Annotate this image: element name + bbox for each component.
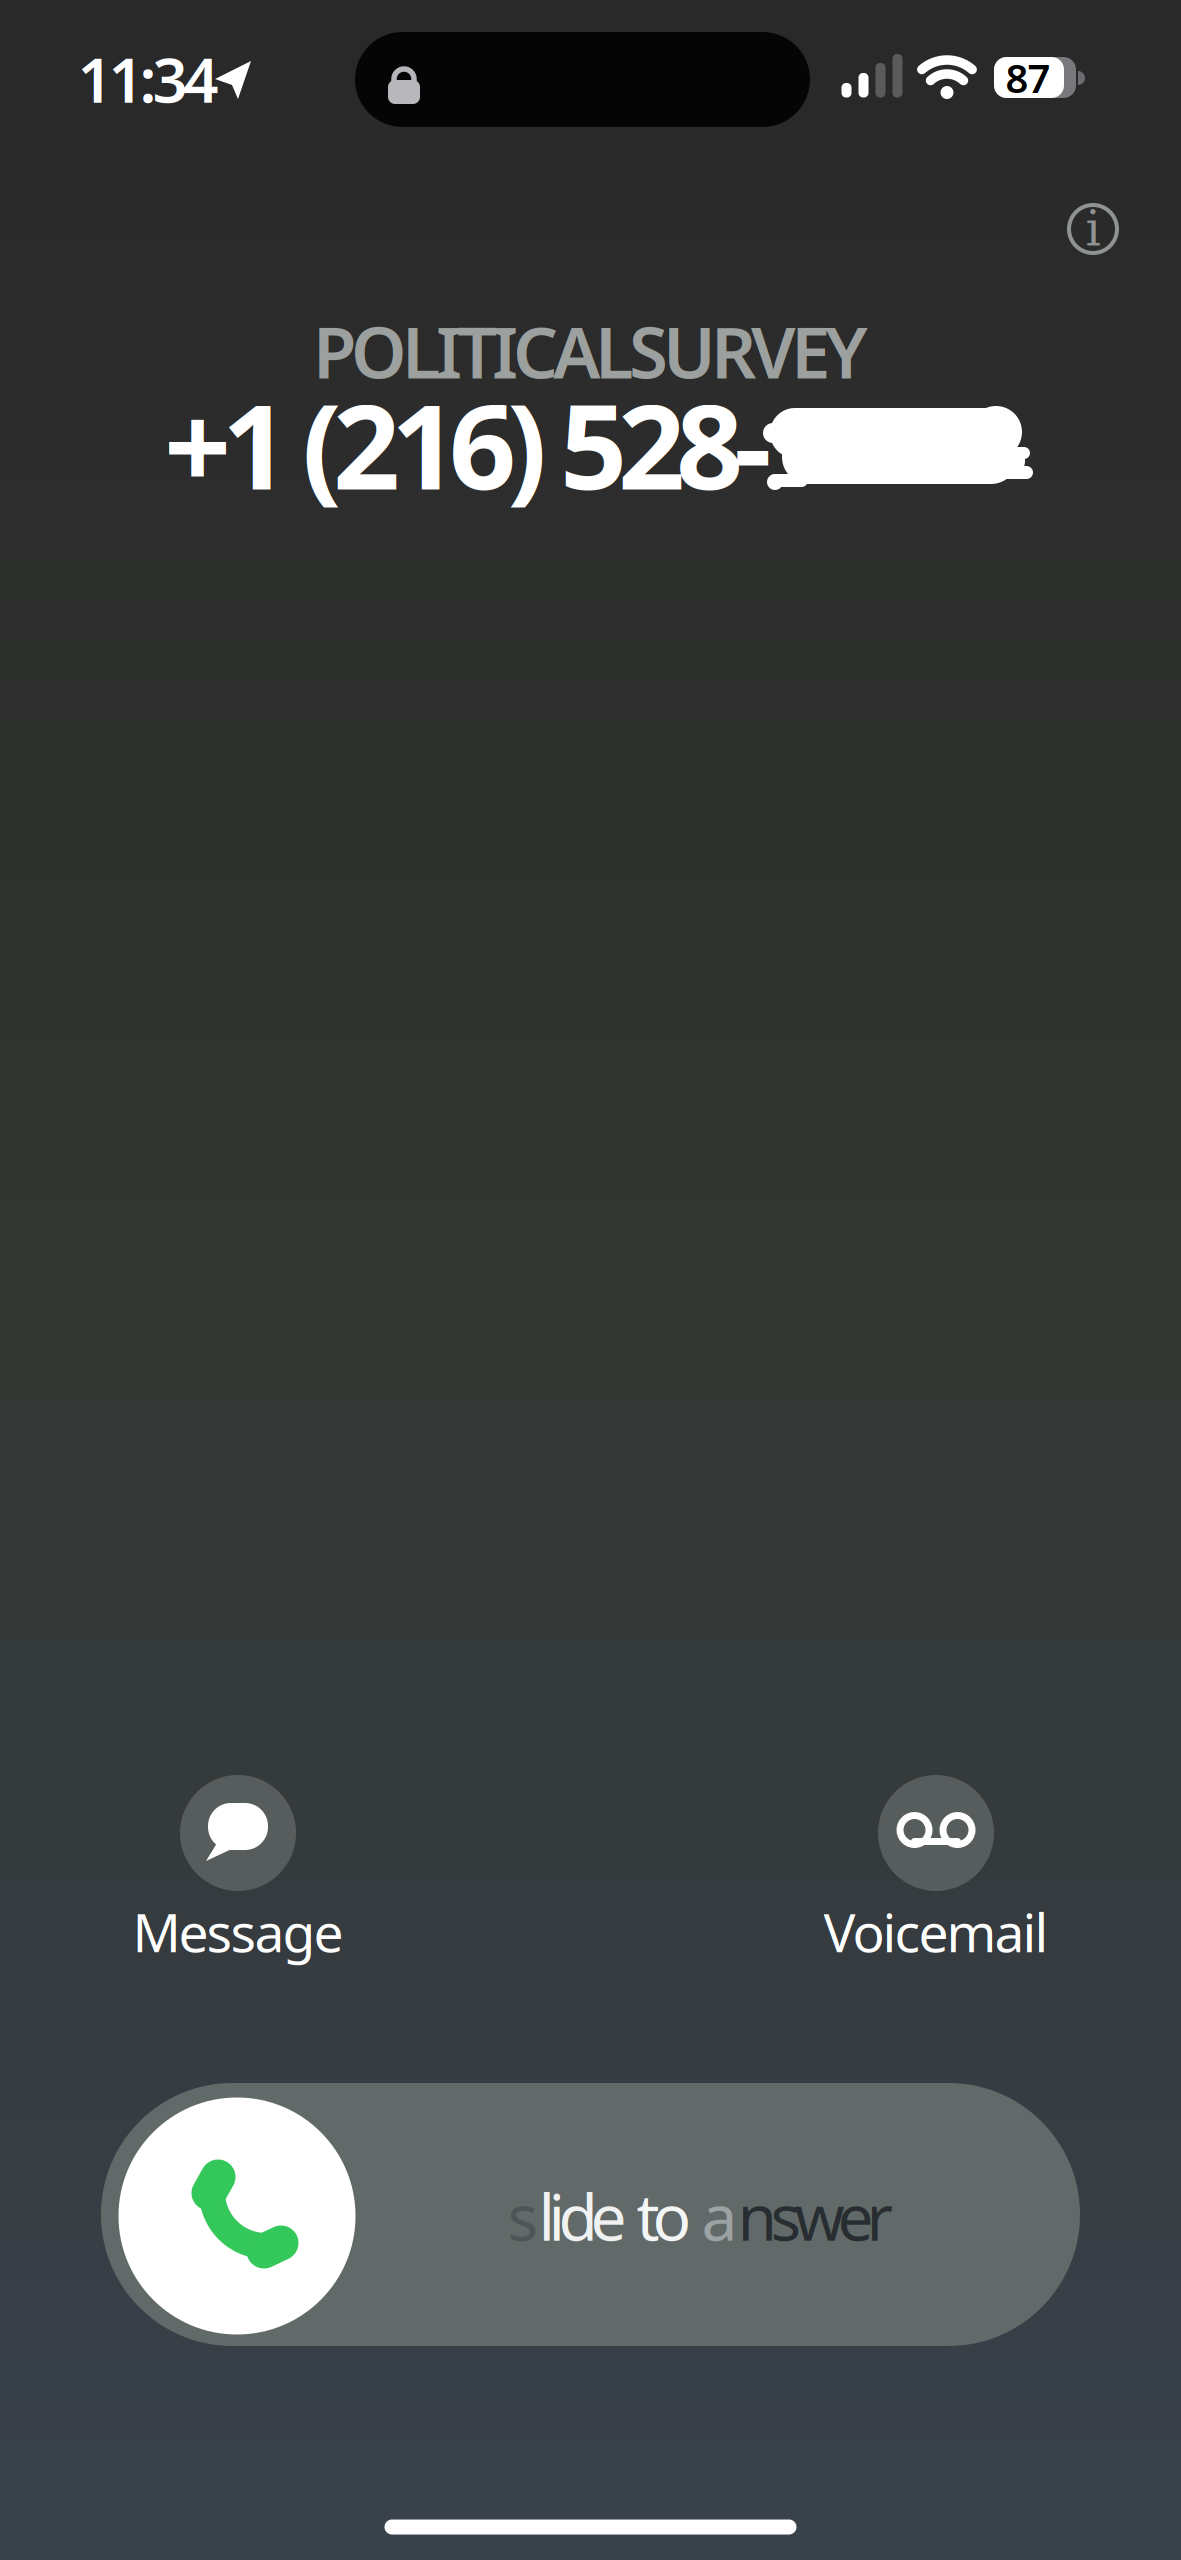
staticText: Message [132, 1896, 343, 1967]
staticText: Voicemail [823, 1896, 1048, 1967]
staticText: s [507, 2173, 538, 2258]
button[interactable]: Message [138, 1775, 338, 1965]
staticText: 11:34 [77, 38, 218, 120]
button[interactable]: Voicemail [836, 1775, 1036, 1965]
staticText: to [626, 2173, 701, 2258]
staticText: nswer [737, 2173, 892, 2258]
staticText: +1 (216) 528- [164, 366, 772, 522]
staticText: a [701, 2173, 737, 2258]
staticText: 87 [1005, 51, 1050, 104]
button[interactable]: Info [1066, 202, 1120, 256]
staticText: POLITICALSURVEY [313, 304, 868, 398]
button[interactable]: Slide to answer [101, 2083, 1080, 2346]
staticText: lide [538, 2173, 626, 2258]
staticText: i [1085, 201, 1100, 257]
